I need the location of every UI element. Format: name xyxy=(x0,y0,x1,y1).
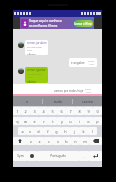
button[interactable]: 6 xyxy=(57,107,66,115)
button[interactable]: Toque aqui e conheca xyxy=(20,17,94,29)
button[interactable]: e angabre xyxy=(69,58,97,67)
staticText: t xyxy=(52,119,54,124)
button[interactable]: 2 xyxy=(21,107,30,115)
button[interactable]: r xyxy=(39,117,48,125)
button[interactable]: Send xyxy=(90,94,99,103)
staticText: 10:40 xyxy=(86,91,92,94)
button[interactable]: 8 xyxy=(75,107,84,115)
button[interactable]: q xyxy=(13,117,21,125)
button[interactable]: t xyxy=(48,117,57,125)
button[interactable]: Português xyxy=(37,151,79,161)
button[interactable]: 5 xyxy=(48,107,57,115)
button[interactable]: m xyxy=(80,137,89,145)
button[interactable]: 0 xyxy=(93,107,102,115)
button[interactable]: simon.ijjunba xyxy=(25,67,48,83)
button[interactable]: o xyxy=(84,117,93,125)
staticText: z xyxy=(30,139,32,144)
staticText: 10:35 xyxy=(27,76,33,79)
button[interactable]: vamos pra todos hoje xyxy=(52,86,94,95)
button[interactable]: k xyxy=(79,127,88,135)
button[interactable]: Acesse o Filme Web xyxy=(74,20,93,27)
button[interactable]: simon.jarubim xyxy=(25,40,48,55)
staticText: 2 xyxy=(24,109,27,114)
button[interactable]: e xyxy=(13,96,42,106)
button[interactable]: x xyxy=(35,137,44,145)
button[interactable]: f xyxy=(43,127,52,135)
staticText: oltima xyxy=(27,80,36,83)
staticText: c xyxy=(48,139,50,144)
staticText: 10:21 xyxy=(27,49,33,52)
staticText: tudo xyxy=(54,99,62,104)
button[interactable]: u xyxy=(66,117,75,125)
staticText: i xyxy=(79,119,80,124)
staticText: 8 xyxy=(78,109,81,114)
button[interactable]: s xyxy=(26,127,34,135)
button[interactable]: g xyxy=(52,127,61,135)
staticText: o xyxy=(87,119,90,124)
button[interactable]: Settings xyxy=(27,151,37,161)
button[interactable]: 1 xyxy=(13,107,21,115)
staticText: 7 xyxy=(69,109,72,114)
button[interactable]: n xyxy=(71,137,80,145)
button[interactable]: j xyxy=(70,127,79,135)
staticText: ontem xyxy=(88,60,95,63)
button[interactable]: h xyxy=(61,127,70,135)
button[interactable]: 4 xyxy=(39,107,48,115)
staticText: Toque aqui e conheca xyxy=(29,19,62,23)
button[interactable]: correo xyxy=(73,96,102,106)
button[interactable]: tudo xyxy=(43,96,72,106)
staticText: w xyxy=(24,119,27,124)
staticText: m xyxy=(83,139,87,144)
staticText: correo xyxy=(82,99,93,104)
staticText: q xyxy=(16,119,19,124)
button[interactable]: p xyxy=(93,117,102,125)
staticText: r xyxy=(43,119,45,124)
staticText: Acesse o Filme Web xyxy=(74,22,93,26)
button[interactable]: Backspace xyxy=(89,137,102,145)
button[interactable]: 3 xyxy=(30,107,39,115)
staticText: Sym xyxy=(17,154,24,158)
button[interactable]: i xyxy=(75,117,84,125)
button[interactable]: a xyxy=(18,127,26,135)
staticText: 5 xyxy=(51,109,54,114)
staticText: j xyxy=(74,129,75,134)
staticText: x xyxy=(38,139,41,144)
staticText: . xyxy=(83,154,85,159)
button[interactable]: v xyxy=(53,137,62,145)
staticText: Português xyxy=(50,154,66,158)
staticText: e xyxy=(33,119,36,124)
button[interactable]: Sym xyxy=(13,151,27,161)
staticText: 0 xyxy=(96,109,99,114)
button[interactable]: l xyxy=(88,127,97,135)
staticText: 10:34 xyxy=(89,63,95,66)
button[interactable]: d xyxy=(34,127,43,135)
button[interactable]: Enter xyxy=(89,151,102,161)
button[interactable]: z xyxy=(26,137,35,145)
staticText: 6 xyxy=(60,109,63,114)
staticText: 3 xyxy=(33,109,36,114)
staticText: oltima xyxy=(27,53,36,55)
button[interactable]: Shift xyxy=(13,137,26,145)
button[interactable]: c xyxy=(44,137,53,145)
button[interactable]: e xyxy=(30,117,39,125)
button[interactable]: 9 xyxy=(84,107,93,115)
staticText: em rede social xyxy=(27,73,42,76)
button[interactable]: w xyxy=(21,117,30,125)
button[interactable]: 7 xyxy=(66,107,75,115)
staticText: p xyxy=(96,119,99,124)
staticText: 4 xyxy=(42,109,45,114)
staticText: em rede social xyxy=(27,46,42,49)
staticText: s xyxy=(29,129,31,134)
staticText: h xyxy=(64,129,67,134)
staticText: l xyxy=(92,129,93,134)
staticText: k xyxy=(82,129,85,134)
staticText: b xyxy=(65,139,68,144)
staticText: simon.ijjunba xyxy=(27,68,46,72)
staticText: v xyxy=(57,139,59,144)
staticText: y xyxy=(61,119,63,124)
button[interactable]: y xyxy=(57,117,66,125)
staticText: d xyxy=(37,129,40,134)
button[interactable]: b xyxy=(62,137,71,145)
staticText: n xyxy=(74,139,77,144)
